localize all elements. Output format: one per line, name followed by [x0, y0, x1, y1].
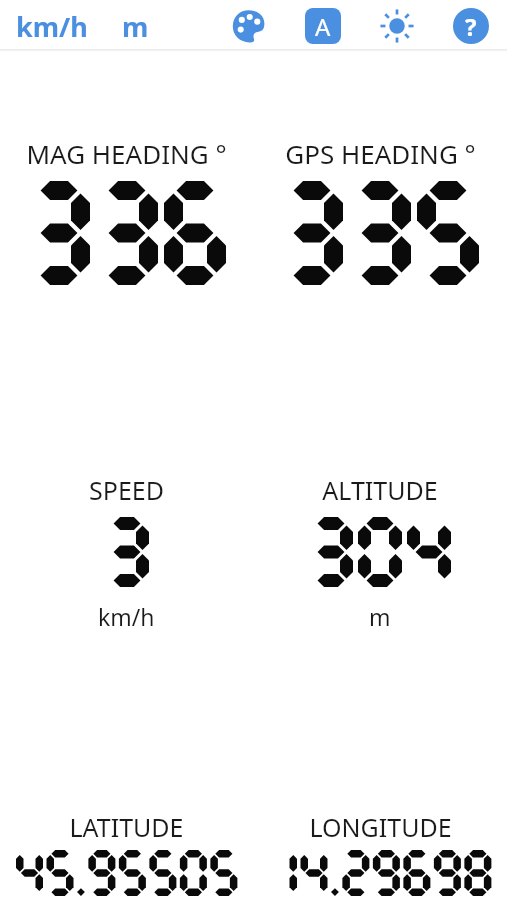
staticText: km/h	[98, 601, 155, 632]
staticText: km/h	[16, 8, 88, 45]
staticText: LONGITUDE	[309, 810, 452, 844]
staticText: m	[122, 8, 149, 45]
staticText: SPEED	[89, 473, 164, 507]
staticText: LATITUDE	[69, 810, 184, 844]
button[interactable]: Auto text size	[305, 8, 341, 44]
staticText: m	[369, 601, 391, 632]
button[interactable]: m	[116, 4, 155, 49]
button[interactable]: Help	[453, 8, 489, 44]
button[interactable]: km/h	[10, 4, 94, 49]
staticText: ?	[465, 10, 477, 43]
staticText: GPS HEADING °	[285, 136, 476, 171]
button[interactable]: Theme colours	[231, 8, 267, 44]
button[interactable]: Brightness	[379, 8, 415, 44]
staticText: A	[315, 10, 331, 43]
staticText: ALTITUDE	[322, 473, 438, 507]
staticText: MAG HEADING °	[26, 136, 227, 171]
